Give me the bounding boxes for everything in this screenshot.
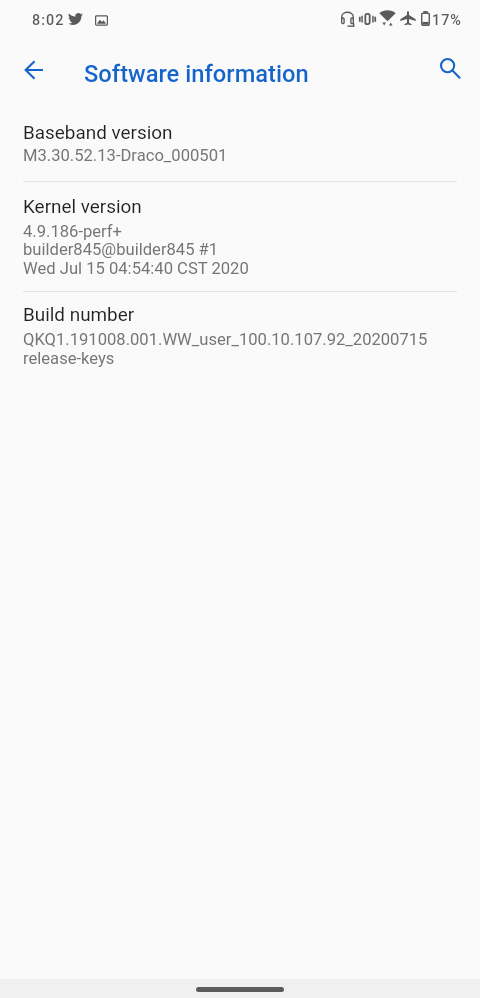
staticText: Wed Jul 15 04:54:40 CST 2020	[23, 259, 249, 278]
button[interactable]: Baseband version	[0, 114, 480, 181]
staticText: Baseband version	[23, 121, 173, 143]
button[interactable]: Kernel version	[0, 188, 480, 292]
staticText: Build number	[23, 303, 135, 325]
staticText: 8:02	[32, 12, 65, 29]
staticText: 4.9.186-perf+	[23, 222, 123, 241]
staticText: M3.30.52.13-Draco_000501	[23, 146, 228, 165]
button[interactable]: Back	[9, 45, 57, 93]
staticText: Kernel version	[23, 195, 142, 217]
staticText: QKQ1.191008.001.WW_user_100.10.107.92_20…	[23, 330, 428, 349]
staticText: release-keys	[23, 349, 115, 368]
staticText: 17%	[432, 12, 462, 29]
staticText: Software information	[84, 60, 309, 88]
button[interactable]: Search	[426, 44, 474, 92]
button[interactable]: Build number	[0, 296, 480, 384]
staticText: builder845@builder845 #1	[23, 240, 219, 259]
